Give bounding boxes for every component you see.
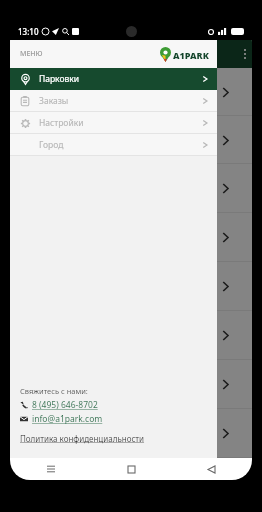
- button[interactable]: Парковки: [10, 68, 217, 90]
- staticText: info@a1park.com: [32, 413, 103, 425]
- staticText: 8 (495) 646-8702: [32, 399, 98, 411]
- button[interactable]: Home: [124, 462, 138, 476]
- button[interactable]: Back: [204, 462, 218, 476]
- staticText: МЕНЮ: [20, 49, 43, 59]
- button[interactable]: 8 (495) 646-8702: [20, 399, 98, 411]
- staticText: Политика конфиденциальности: [20, 433, 145, 444]
- staticText: Настройки: [39, 117, 84, 129]
- button[interactable]: info@a1park.com: [20, 413, 103, 425]
- staticText: 13:10: [18, 26, 39, 37]
- staticText: Парковки: [39, 73, 80, 85]
- button[interactable]: Политика конфиденциальности: [20, 433, 145, 444]
- button[interactable]: Настройки: [10, 112, 217, 134]
- staticText: A1PARK: [173, 49, 209, 61]
- staticText: Город: [39, 139, 64, 151]
- button[interactable]: Город: [10, 134, 217, 156]
- staticText: Свяжитесь с нами:: [20, 386, 88, 396]
- button[interactable]: Заказы: [10, 90, 217, 112]
- staticText: Заказы: [39, 95, 69, 107]
- button[interactable]: Recents: [44, 462, 58, 476]
